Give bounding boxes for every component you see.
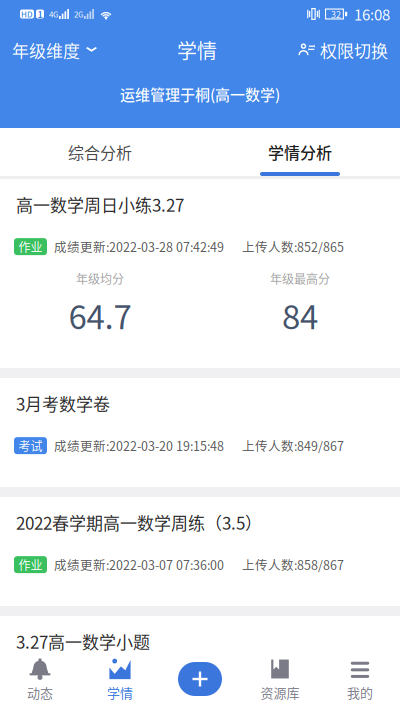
button[interactable]: 综合分析: [0, 128, 200, 176]
staticText: 84: [282, 291, 318, 339]
staticText: 64.7: [68, 291, 131, 339]
staticText: 学情: [177, 35, 217, 64]
button[interactable]: 新建: [160, 651, 240, 711]
staticText: 作业: [18, 675, 42, 692]
staticText: 4G: [49, 8, 59, 20]
staticText: 学情分析: [268, 140, 332, 164]
staticText: 成绩更新:2022-03-01 08:00:00: [54, 675, 224, 693]
staticText: 动态: [27, 683, 53, 702]
staticText: 运维管理于桐(高一数学): [120, 83, 280, 105]
staticText: 2G: [74, 8, 84, 20]
staticText: 3.27高一数学小题: [16, 629, 150, 654]
staticText: 年级均分: [76, 270, 124, 287]
staticText: 综合分析: [68, 140, 132, 164]
button[interactable]: 动态: [0, 651, 80, 711]
button[interactable]: 3月考数学卷: [0, 378, 400, 487]
staticText: HD: [21, 8, 33, 20]
staticText: 权限切换: [320, 38, 388, 62]
staticText: 成绩更新:2022-03-07 07:36:00: [54, 556, 224, 574]
button[interactable]: 年级维度: [2, 28, 107, 72]
staticText: 作业: [18, 238, 42, 255]
staticText: 2022春学期高一数学周练（3.5）: [16, 510, 262, 535]
button[interactable]: 权限切换: [287, 28, 398, 72]
button[interactable]: 学情: [80, 651, 160, 711]
button[interactable]: 学情分析: [200, 128, 400, 176]
staticText: 3月考数学卷: [16, 391, 110, 416]
button[interactable]: 高一数学周日小练3.27: [0, 179, 400, 368]
staticText: 上传人数:849/867: [242, 437, 344, 455]
button[interactable]: 我的: [320, 651, 400, 711]
staticText: 我的: [347, 683, 373, 702]
staticText: 作业: [18, 556, 42, 573]
staticText: 学情: [107, 683, 133, 702]
button[interactable]: 3.27高一数学小题: [0, 616, 400, 711]
staticText: 考试: [18, 437, 42, 454]
staticText: 成绩更新:2022-03-28 07:42:49: [54, 238, 224, 256]
staticText: 年级最高分: [270, 270, 330, 287]
staticText: 年级维度: [12, 38, 80, 62]
button[interactable]: 资源库: [240, 651, 320, 711]
staticText: 32: [331, 7, 341, 20]
staticText: 成绩更新:2022-03-20 19:15:48: [54, 437, 224, 455]
staticText: 高一数学周日小练3.27: [16, 192, 184, 217]
staticText: 上传人数:800/867: [242, 675, 344, 693]
button[interactable]: 2022春学期高一数学周练（3.5）: [0, 497, 400, 606]
staticText: 1: [37, 7, 42, 20]
staticText: 16:08: [354, 3, 390, 25]
staticText: 上传人数:852/865: [242, 238, 344, 256]
staticText: 上传人数:858/867: [242, 556, 344, 574]
staticText: 资源库: [260, 683, 299, 702]
